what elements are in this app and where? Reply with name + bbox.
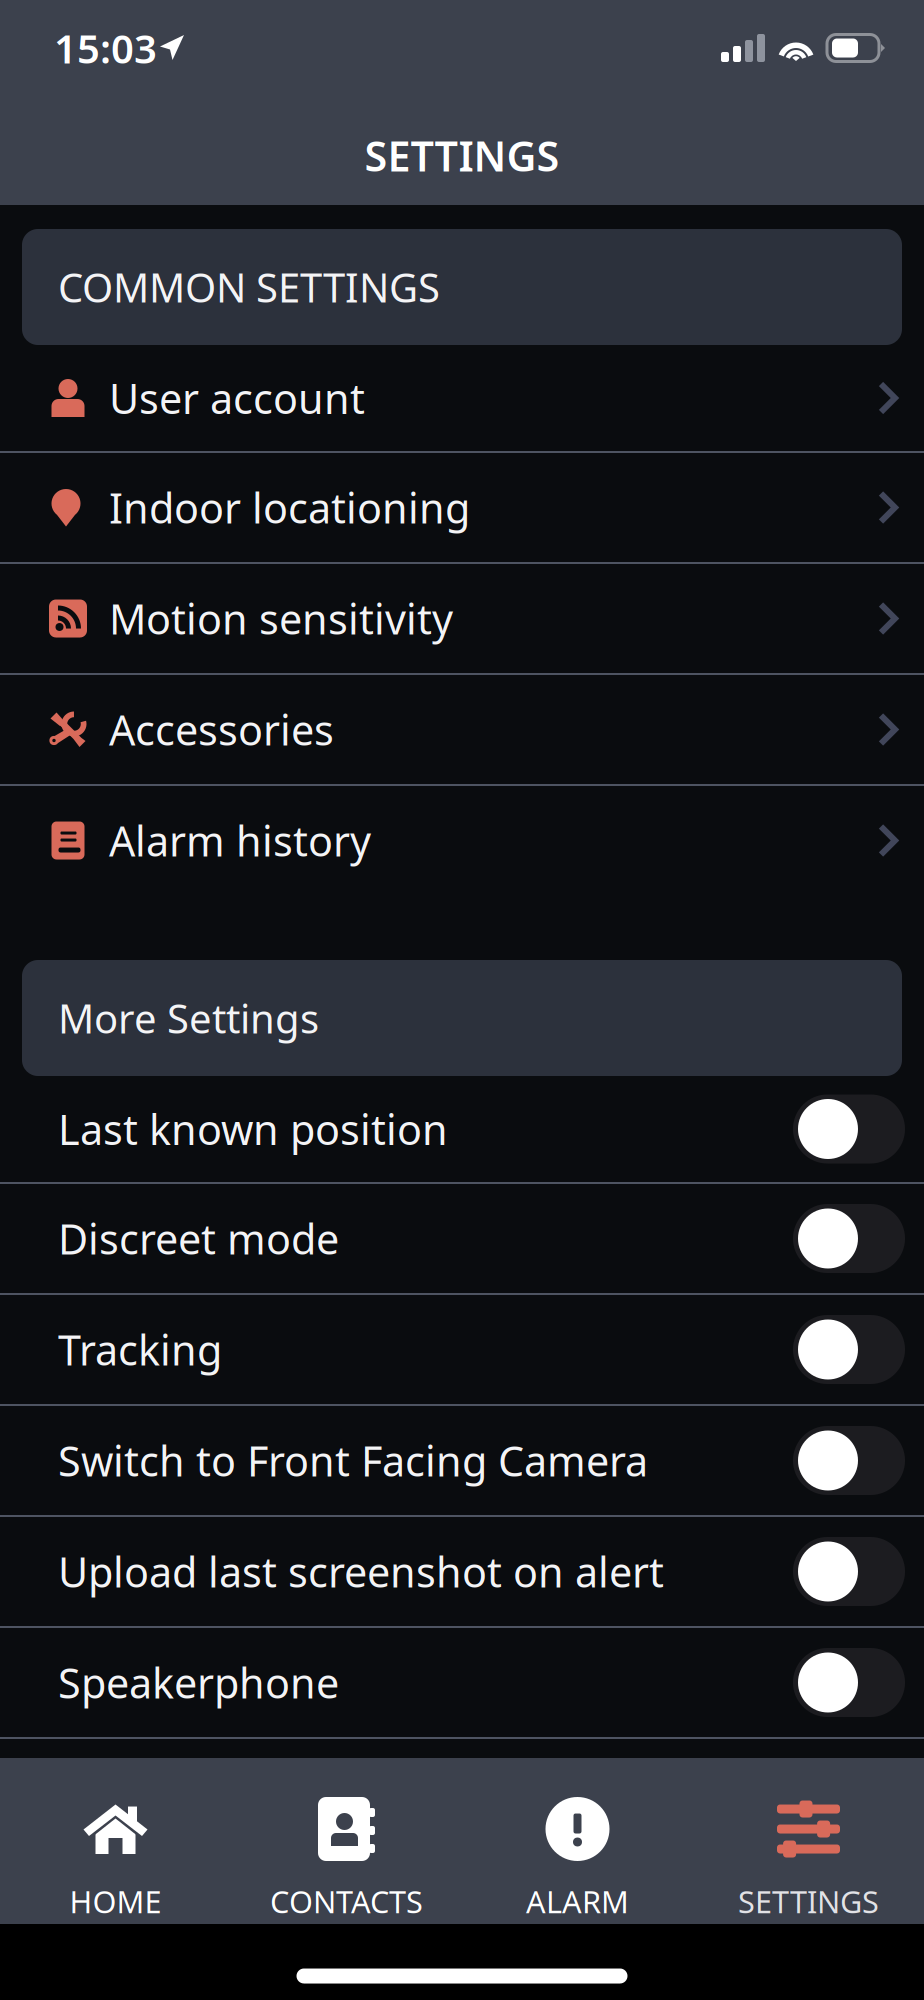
staticText: Last known position [58, 1102, 448, 1156]
staticText: User account [109, 371, 365, 425]
staticText: CONTACTS [270, 1881, 423, 1922]
staticText: Motion sensitivity [109, 591, 453, 646]
staticText: ALARM [526, 1881, 629, 1922]
staticText: HOME [69, 1881, 161, 1922]
staticText: SETTINGS [364, 128, 559, 183]
button[interactable]: Accessories [0, 675, 924, 784]
button[interactable]: Tracking [0, 1295, 924, 1404]
button[interactable]: SETTINGS [693, 1758, 924, 1924]
button[interactable]: Motion sensitivity [0, 564, 924, 673]
staticText: Accessories [109, 702, 334, 757]
button[interactable]: Discreet mode [0, 1184, 924, 1293]
button[interactable]: User account [0, 345, 924, 451]
button[interactable]: ALARM [462, 1758, 693, 1924]
staticText: Tracking [58, 1322, 222, 1377]
staticText: Indoor locationing [109, 480, 470, 535]
button[interactable]: CONTACTS [231, 1758, 462, 1924]
button[interactable]: Upload last screenshot on alert [0, 1517, 924, 1626]
staticText: 15:03 [54, 21, 157, 74]
button[interactable]: Speakerphone [0, 1628, 924, 1737]
button[interactable]: Indoor locationing [0, 453, 924, 562]
staticText: Switch to Front Facing Camera [58, 1433, 648, 1488]
staticText: COMMON SETTINGS [58, 260, 440, 313]
staticText: Discreet mode [58, 1211, 339, 1266]
button[interactable]: HOME [0, 1758, 231, 1924]
staticText: SETTINGS [738, 1881, 879, 1922]
staticText: Upload last screenshot on alert [58, 1544, 664, 1599]
staticText: More Settings [58, 991, 319, 1044]
button[interactable]: Last known position [0, 1076, 924, 1182]
staticText: Speakerphone [58, 1655, 339, 1710]
staticText: Alarm history [109, 813, 371, 868]
button[interactable]: Switch to Front Facing Camera [0, 1406, 924, 1515]
button[interactable]: Alarm history [0, 786, 924, 895]
